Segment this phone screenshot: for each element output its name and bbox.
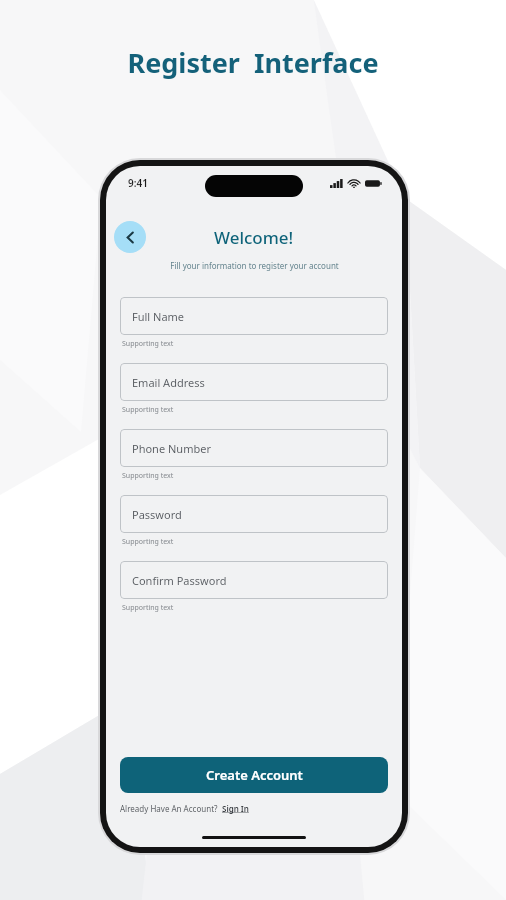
staticText: 9:41 [128,176,148,190]
staticText: Password [132,507,182,522]
button[interactable]: Email Address [120,363,388,401]
staticText: Sign In [222,803,249,814]
button[interactable]: Full Name [120,297,388,335]
button[interactable]: Phone Number [120,429,388,467]
button[interactable]: Password [120,495,388,533]
staticText: Confirm Password [132,573,227,588]
button[interactable]: Back [114,221,146,253]
staticText: Supporting text [122,471,174,481]
staticText: Full Name [132,309,185,324]
staticText: Phone Number [132,441,211,456]
button[interactable]: Create Account [120,757,388,793]
staticText: Create Account [206,766,303,784]
staticText: Supporting text [122,537,174,547]
staticText: Supporting text [122,603,174,613]
staticText: Supporting text [122,405,174,415]
staticText: Email Address [132,375,205,390]
button[interactable]: Confirm Password [120,561,388,599]
button[interactable]: Sign In [222,803,249,814]
staticText: Supporting text [122,339,174,349]
staticText: Register Interface [127,44,379,81]
staticText: Already Have An Account? [120,803,222,814]
staticText: Fill your information to register your a… [170,260,339,271]
staticText: Welcome! [214,226,294,249]
